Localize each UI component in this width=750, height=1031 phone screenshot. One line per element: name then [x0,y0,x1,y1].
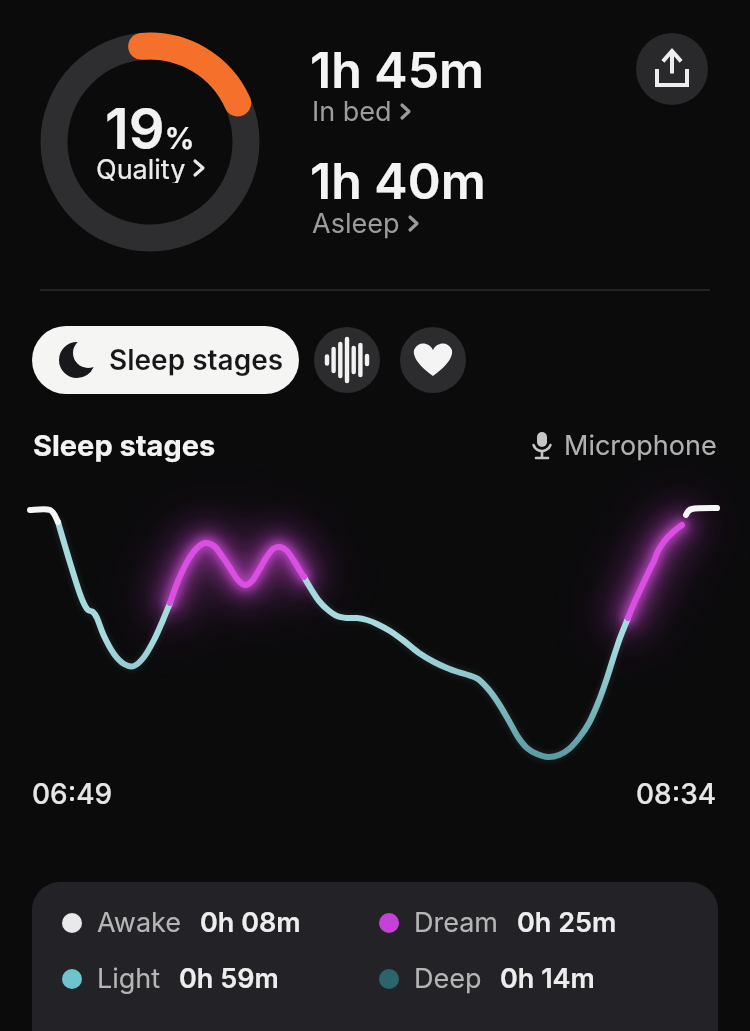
staticText: Awake [97,906,182,939]
button[interactable]: Awake [62,906,301,939]
button[interactable]: Asleep [312,207,418,240]
staticText: Microphone [564,429,717,462]
button[interactable] [400,327,466,393]
staticText: Asleep [312,207,400,240]
button[interactable] [314,327,380,393]
staticText: 19% [105,95,195,159]
button[interactable]: Sleep stages [32,326,299,394]
button[interactable]: Dream [379,906,617,939]
staticText: 1h 40m [310,151,486,211]
button[interactable] [636,33,708,105]
staticText: 1h 45m [310,40,485,100]
staticText: 0h 08m [200,906,301,939]
staticText: 08:34 [636,777,717,811]
staticText: 06:49 [32,777,113,811]
staticText: 0h 25m [517,906,617,939]
staticText: Light [97,962,161,995]
staticText: Quality [96,153,186,183]
button[interactable]: In bed [312,95,410,128]
button[interactable]: Light [62,962,279,995]
staticText: Sleep stages [109,343,284,377]
button[interactable]: Microphone [532,429,717,462]
staticText: In bed [312,95,392,128]
staticText: Dream [414,906,499,939]
staticText: 0h 59m [179,962,279,995]
staticText: Deep [414,962,482,995]
staticText: 0h 14m [500,962,595,995]
button[interactable]: Quality [44,153,256,183]
staticText: Sleep stages [33,428,216,463]
button[interactable]: Deep [379,962,595,995]
